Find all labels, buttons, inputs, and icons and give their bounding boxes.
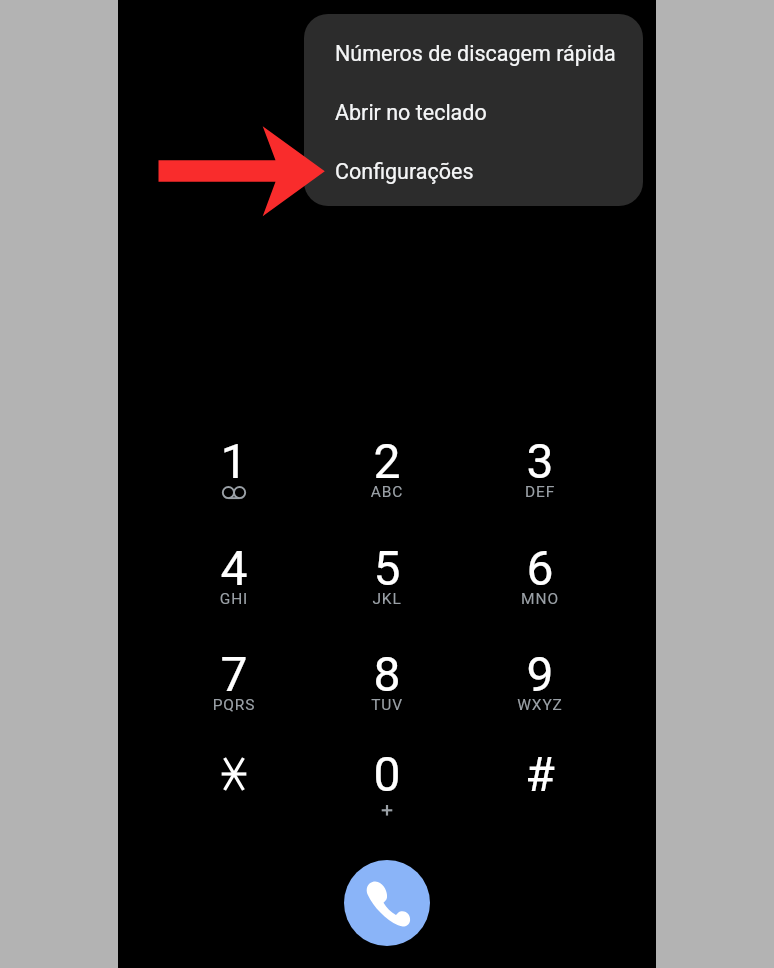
staticText: ABC: [317, 483, 457, 501]
staticText: 2: [317, 433, 457, 489]
button[interactable]: 3 DEF: [470, 409, 610, 513]
staticText: JKL: [317, 590, 457, 608]
button[interactable]: Abrir no teclado: [304, 83, 643, 142]
staticText: Abrir no teclado: [335, 100, 487, 125]
button[interactable]: pound: [470, 722, 610, 826]
button[interactable]: 2 ABC: [317, 409, 457, 513]
staticText: 8: [317, 646, 457, 702]
staticText: 0: [317, 746, 457, 802]
staticText: 1: [164, 433, 304, 489]
staticText: WXYZ: [470, 696, 610, 714]
button[interactable]: 4 GHI: [164, 516, 304, 620]
staticText: 5: [317, 540, 457, 596]
staticText: PQRS: [164, 696, 304, 714]
button[interactable]: 7 PQRS: [164, 622, 304, 726]
staticText: 9: [470, 646, 610, 702]
staticText: 3: [470, 433, 610, 489]
staticText: 6: [470, 540, 610, 596]
button[interactable]: star: [164, 722, 304, 826]
button[interactable]: 0 plus: [317, 722, 457, 826]
staticText: Números de discagem rápida: [335, 41, 616, 66]
button[interactable]: Call: [344, 860, 430, 946]
button[interactable]: 5 JKL: [317, 516, 457, 620]
staticText: 7: [164, 646, 304, 702]
staticText: TUV: [317, 696, 457, 714]
button[interactable]: 1 voicemail: [164, 409, 304, 513]
staticText: #: [470, 746, 610, 802]
button[interactable]: 6 MNO: [470, 516, 610, 620]
staticText: DEF: [470, 483, 610, 501]
button[interactable]: 9 WXYZ: [470, 622, 610, 726]
staticText: GHI: [164, 590, 304, 608]
button[interactable]: Números de discagem rápida: [304, 24, 643, 83]
staticText: 4: [164, 540, 304, 596]
staticText: MNO: [470, 590, 610, 608]
button[interactable]: 8 TUV: [317, 622, 457, 726]
staticText: Configurações: [335, 159, 474, 184]
button[interactable]: Configurações: [304, 142, 643, 201]
